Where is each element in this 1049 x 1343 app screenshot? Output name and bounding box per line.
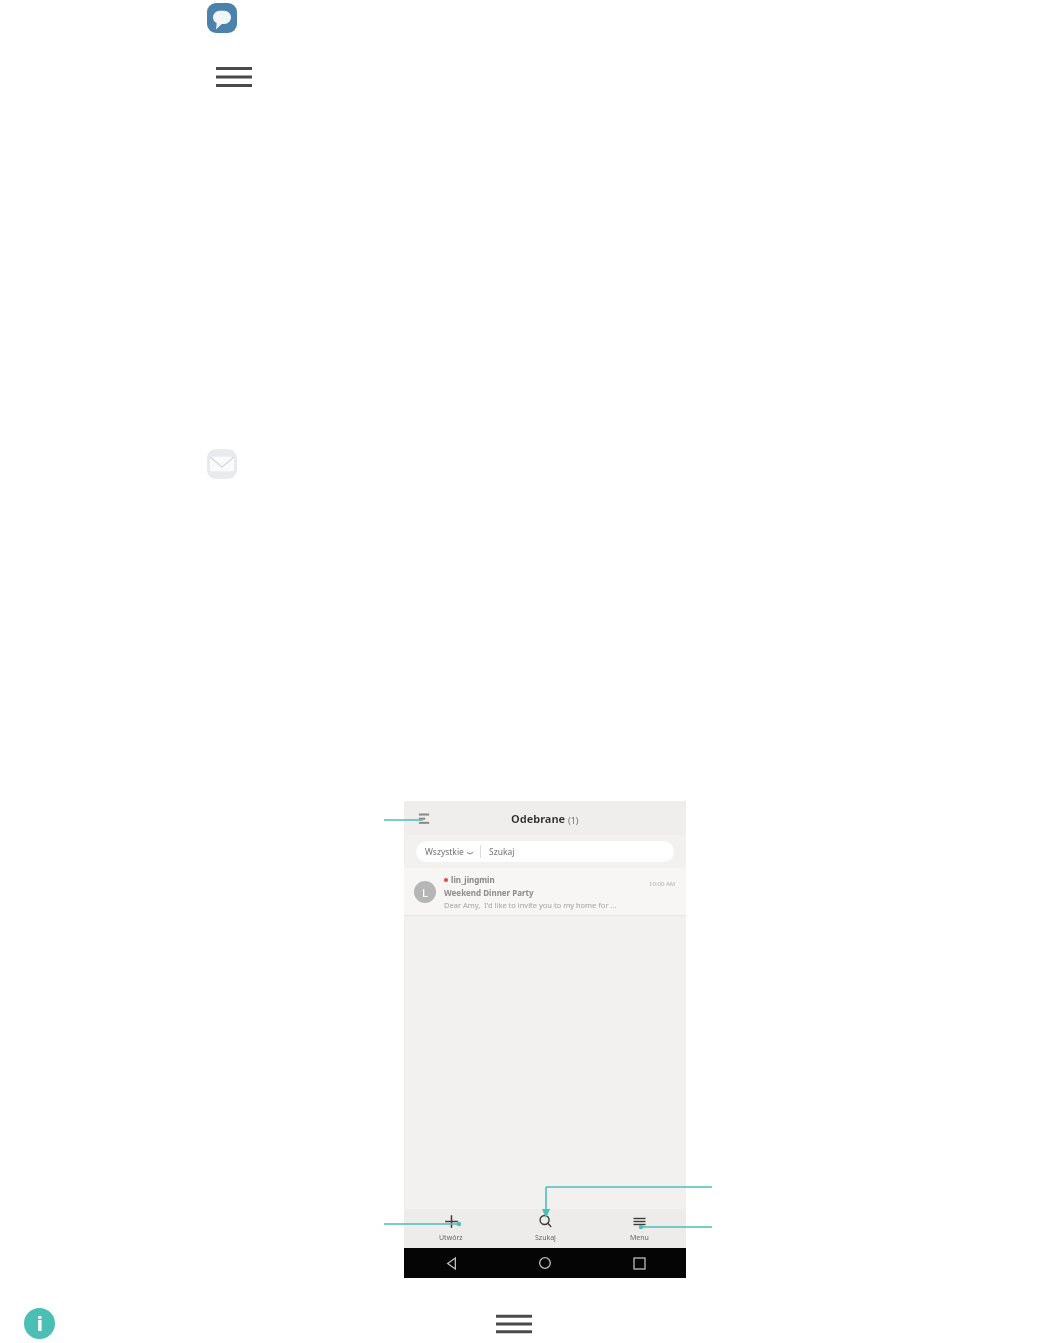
button[interactable]: Messaging app: [207, 3, 237, 33]
staticText: Odebrane: [511, 811, 566, 826]
staticText: i: [37, 1311, 43, 1337]
staticText: 10:00 AM: [649, 880, 676, 888]
staticText: Szukaj: [489, 846, 515, 858]
button[interactable]: Menu: [592, 1209, 686, 1248]
staticText: Utwórz: [439, 1233, 463, 1243]
staticText: Weekend Dinner Party: [444, 887, 534, 898]
staticText: Szukaj: [535, 1233, 556, 1243]
button[interactable]: Menu: [216, 62, 252, 92]
staticText: Wszystkie: [425, 846, 464, 858]
button[interactable]: Menu: [496, 1310, 532, 1338]
staticText: lin_jingmin: [451, 874, 495, 885]
button[interactable]: Back: [441, 1253, 461, 1273]
button[interactable]: Information: [24, 1308, 55, 1339]
button[interactable]: Szukaj: [498, 1209, 592, 1248]
button[interactable]: Open navigation drawer: [416, 810, 432, 826]
staticText: (1): [568, 814, 579, 826]
button[interactable]: Recent apps: [629, 1253, 649, 1273]
button[interactable]: Email app: [207, 449, 237, 479]
staticText: Dear Amy, I'd like to invite you to my h…: [444, 900, 617, 910]
button[interactable]: L: [404, 868, 686, 916]
staticText: Menu: [630, 1233, 649, 1243]
button[interactable]: Utwórz: [404, 1209, 498, 1248]
button[interactable]: Wszystkie: [416, 841, 674, 862]
staticText: L: [422, 885, 428, 900]
button[interactable]: Home: [535, 1253, 555, 1273]
